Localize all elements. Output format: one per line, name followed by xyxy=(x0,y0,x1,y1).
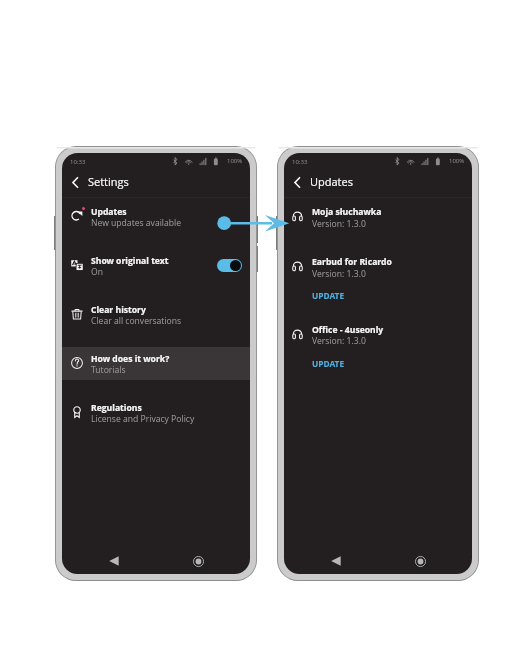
button[interactable] xyxy=(62,396,250,429)
staticText: UPDATE xyxy=(312,290,345,301)
staticText: Updates xyxy=(91,206,127,218)
staticText: UPDATE xyxy=(312,358,345,369)
staticText: 10:33 xyxy=(292,158,308,166)
staticText: Tutorials xyxy=(91,364,126,376)
staticText: New updates available xyxy=(91,217,182,229)
staticText: Version: 1.3.0 xyxy=(312,268,366,280)
staticText: 10:33 xyxy=(70,158,86,166)
staticText: Updates xyxy=(310,174,353,189)
button[interactable]: Back xyxy=(328,553,344,569)
button[interactable] xyxy=(284,318,472,368)
staticText: 100% xyxy=(227,157,243,165)
staticText: How does it work? xyxy=(91,353,170,365)
staticText: Clear all conversations xyxy=(91,315,182,327)
button[interactable]: Back xyxy=(106,553,122,569)
button[interactable] xyxy=(62,347,250,380)
staticText: Clear history xyxy=(91,304,146,316)
staticText: Version: 1.3.0 xyxy=(312,218,366,230)
staticText: On xyxy=(91,266,103,278)
staticText: Moja słuchawka xyxy=(312,206,382,218)
staticText: Settings xyxy=(88,174,129,189)
staticText: License and Privacy Policy xyxy=(91,413,195,425)
staticText: Show original text xyxy=(91,255,169,267)
staticText: Office - 4useonly xyxy=(312,324,384,336)
button[interactable] xyxy=(284,200,472,233)
button[interactable]: Home xyxy=(190,553,206,569)
button[interactable] xyxy=(311,357,353,371)
staticText: 100% xyxy=(449,157,465,165)
button[interactable] xyxy=(284,250,472,300)
button[interactable]: Back xyxy=(290,173,310,192)
staticText: Earbud for Ricardo xyxy=(312,256,392,268)
button[interactable]: Toggle show original text xyxy=(217,259,242,272)
button[interactable] xyxy=(311,289,353,303)
button[interactable]: Back xyxy=(68,173,88,192)
button[interactable] xyxy=(62,298,250,331)
button[interactable]: Home xyxy=(412,553,428,569)
button[interactable]: Toggle show original text xyxy=(62,249,250,282)
staticText: Regulations xyxy=(91,402,142,414)
button[interactable] xyxy=(62,199,250,232)
staticText: Version: 1.3.0 xyxy=(312,335,366,347)
